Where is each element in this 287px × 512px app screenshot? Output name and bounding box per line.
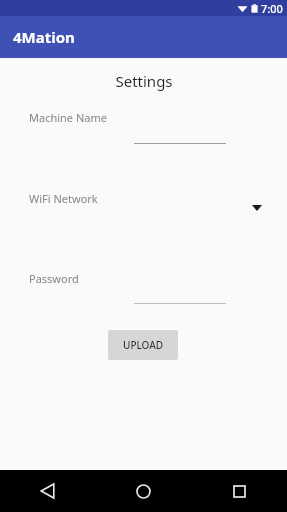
staticText: 7:00	[261, 1, 283, 16]
staticText: Settings	[115, 71, 173, 91]
button[interactable]: Back	[0, 470, 95, 512]
staticText: Password	[29, 271, 79, 286]
button[interactable]: UPLOAD	[108, 330, 178, 360]
staticText: WiFi Network	[29, 191, 98, 206]
staticText: UPLOAD	[123, 338, 164, 352]
button[interactable]: Home	[95, 470, 191, 512]
button[interactable]	[134, 280, 226, 304]
staticText: Machine Name	[29, 110, 107, 125]
button[interactable]: Recent apps	[191, 470, 287, 512]
staticText: 4Mation	[13, 27, 75, 47]
button[interactable]	[134, 120, 226, 144]
button[interactable]: Select WiFi network	[134, 194, 264, 220]
